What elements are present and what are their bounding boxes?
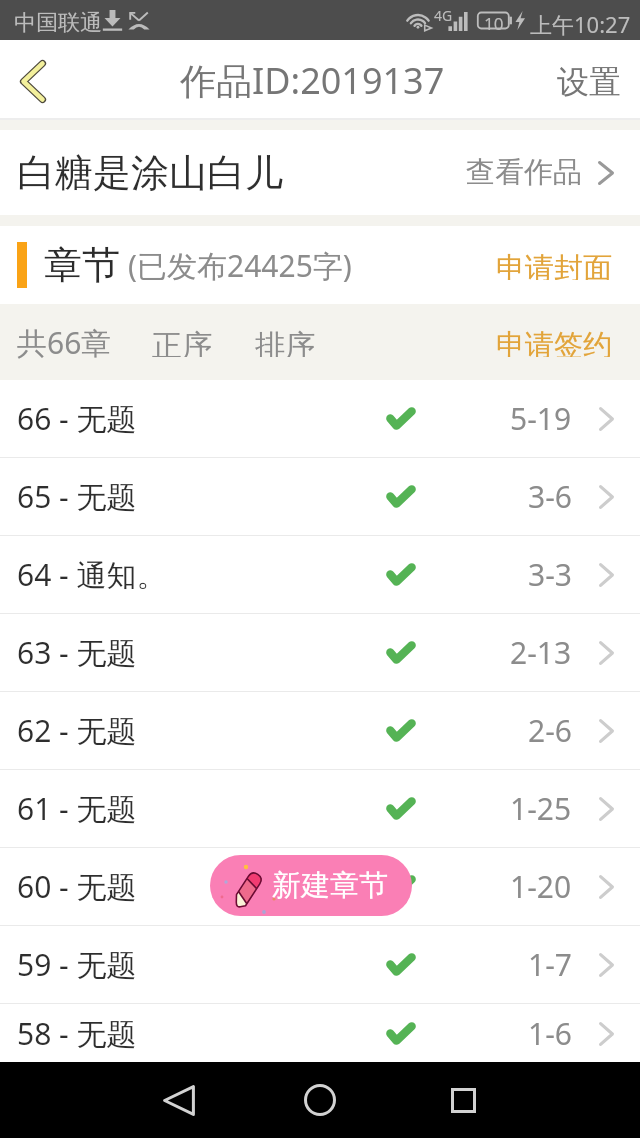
button[interactable]: Recent apps (432, 1069, 494, 1131)
staticText: 2-6 (528, 710, 572, 751)
button[interactable]: 59 - 无题 (0, 926, 640, 1003)
staticText: 3-3 (528, 554, 572, 595)
staticText: 62 - 无题 (17, 710, 137, 751)
button[interactable]: 白糖是涂山白儿 (0, 130, 640, 215)
staticText: 申请签约 (496, 327, 612, 357)
staticText: (已发布24425字) (128, 245, 352, 286)
staticText: 1-20 (510, 866, 572, 907)
staticText: 4G (434, 6, 453, 25)
button[interactable]: 66 - 无题 (0, 380, 640, 457)
staticText: 5-19 (510, 398, 572, 439)
button[interactable]: 63 - 无题 (0, 614, 640, 691)
button[interactable]: Home (289, 1069, 351, 1131)
staticText: 59 - 无题 (17, 944, 137, 985)
staticText: 查看作品 (466, 154, 582, 191)
staticText: 正序 (152, 327, 212, 357)
button[interactable]: 排序 (255, 304, 315, 380)
staticText: 1-6 (528, 1013, 572, 1054)
staticText: 新建章节 (272, 867, 388, 904)
staticText: 65 - 无题 (17, 476, 137, 517)
staticText: 60 - 无题 (17, 866, 137, 907)
staticText: 排序 (255, 327, 315, 357)
button[interactable]: 申请封面 (496, 226, 612, 304)
staticText: 中国联通 (14, 9, 102, 37)
staticText: 设置 (557, 62, 621, 102)
button[interactable]: Back (148, 1069, 210, 1131)
button[interactable]: Back (1, 49, 65, 113)
button[interactable]: 65 - 无题 (0, 458, 640, 535)
staticText: 共66章 (17, 322, 112, 363)
staticText: 上午10:27 (530, 9, 631, 39)
button[interactable]: 申请签约 (496, 304, 612, 380)
staticText: 61 - 无题 (17, 788, 137, 829)
staticText: 2-13 (510, 632, 572, 673)
button[interactable]: 62 - 无题 (0, 692, 640, 769)
staticText: 申请封面 (496, 250, 612, 280)
staticText: 63 - 无题 (17, 632, 137, 673)
staticText: 作品ID:2019137 (180, 56, 445, 105)
staticText: 66 - 无题 (17, 398, 137, 439)
staticText: 白糖是涂山白儿 (17, 149, 283, 197)
button[interactable]: 正序 (152, 304, 212, 380)
staticText: 58 - 无题 (17, 1013, 137, 1054)
staticText: 10 (484, 12, 504, 35)
button[interactable]: 设置 (538, 44, 640, 120)
button[interactable]: 64 - 通知。 (0, 536, 640, 613)
staticText: 1-7 (528, 944, 572, 985)
button[interactable]: 61 - 无题 (0, 770, 640, 847)
staticText: 64 - 通知。 (17, 554, 167, 595)
staticText: 章节 (44, 241, 120, 289)
button[interactable]: 60 - 无题 (0, 848, 640, 925)
staticText: 3-6 (528, 476, 572, 517)
staticText: 1-25 (510, 788, 572, 829)
button[interactable]: 58 - 无题 (0, 1004, 640, 1062)
button[interactable]: 新建章节 (210, 855, 412, 916)
